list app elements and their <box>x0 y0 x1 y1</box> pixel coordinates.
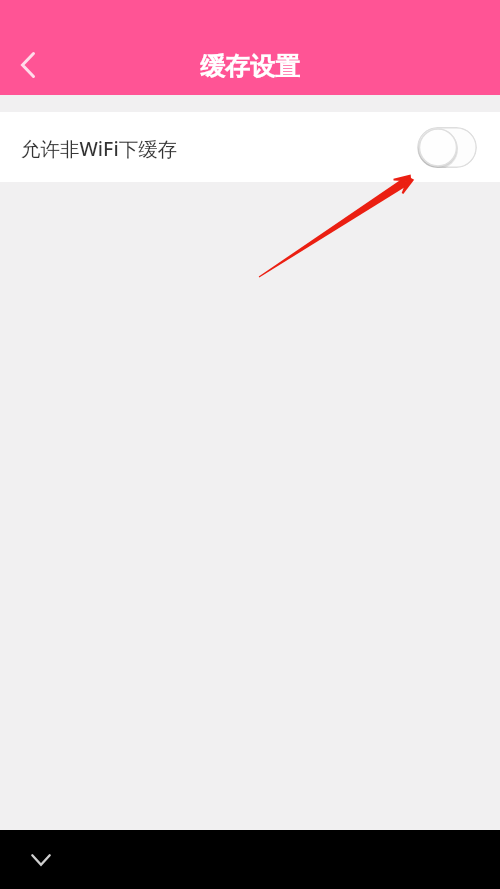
button[interactable]: Back <box>6 43 50 87</box>
staticText: 缓存设置 <box>200 51 300 82</box>
button[interactable]: 允许非WiFi下缓存 <box>0 112 500 182</box>
button[interactable]: Allow cache on mobile data <box>417 127 477 168</box>
staticText: 允许非WiFi下缓存 <box>21 135 178 162</box>
button[interactable]: Collapse keyboard <box>19 838 63 882</box>
